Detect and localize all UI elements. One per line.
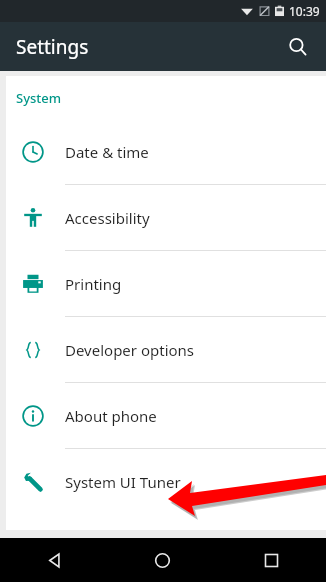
button[interactable]: Back bbox=[0, 538, 108, 582]
button[interactable]: Home bbox=[108, 538, 217, 582]
staticText: Printing bbox=[65, 274, 122, 294]
staticText: About phone bbox=[65, 406, 157, 426]
button[interactable]: Recent apps bbox=[217, 538, 326, 582]
button[interactable]: Accessibility bbox=[0, 185, 326, 250]
button[interactable]: Developer options bbox=[0, 317, 326, 382]
button[interactable]: Printing bbox=[0, 251, 326, 316]
staticText: System UI Tuner bbox=[65, 472, 181, 492]
staticText: Accessibility bbox=[65, 208, 150, 228]
button[interactable]: Date & time bbox=[0, 119, 326, 184]
staticText: Developer options bbox=[65, 340, 195, 360]
staticText: Date & time bbox=[65, 142, 149, 162]
button[interactable]: About phone bbox=[0, 383, 326, 448]
staticText: System bbox=[16, 89, 62, 107]
staticText: 10:39 bbox=[289, 3, 320, 19]
staticText: Settings bbox=[16, 34, 89, 60]
button[interactable]: System UI Tuner bbox=[0, 449, 326, 514]
button[interactable]: Search bbox=[278, 27, 318, 67]
